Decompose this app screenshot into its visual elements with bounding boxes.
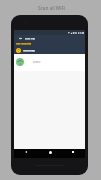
staticText: AndroidWifi — [33, 62, 41, 64]
staticText: AndroidWifi — [33, 61, 41, 63]
button[interactable]: AndroidWifi — [14, 54, 85, 71]
staticText: Scan all WiFi — [38, 5, 66, 11]
staticText: Wifi Connected — [16, 42, 32, 45]
button[interactable]: Recent apps — [70, 149, 76, 155]
button[interactable]: Home — [47, 149, 53, 155]
staticText: AndroidWifi — [23, 49, 35, 52]
staticText: AndroidWifi — [23, 50, 35, 53]
staticText: Wifi Connected — [16, 43, 32, 46]
staticText: Scan Wifi — [25, 37, 35, 40]
button[interactable]: Back — [23, 149, 29, 155]
staticText: Scan Wifi — [25, 38, 35, 41]
button[interactable]: Back — [16, 34, 24, 42]
